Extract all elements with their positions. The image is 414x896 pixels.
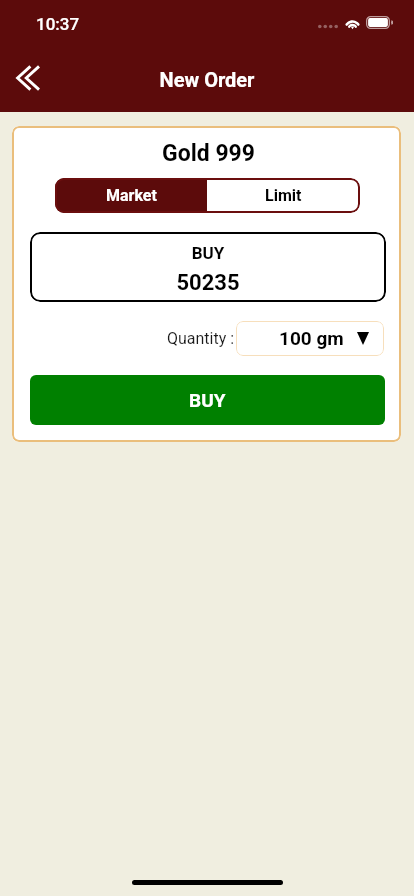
staticText: Gold 999 (14, 140, 401, 167)
button[interactable]: Back (4, 54, 52, 102)
staticText: Market (106, 186, 157, 205)
staticText: BUY (30, 243, 386, 263)
staticText: Quantity : (167, 329, 235, 348)
staticText: BUY (189, 389, 226, 411)
button[interactable]: Market (55, 178, 207, 213)
button[interactable]: 100 gm (236, 321, 384, 356)
staticText: 10:37 (36, 14, 80, 34)
button[interactable]: Limit (207, 178, 360, 213)
button[interactable]: BUY (30, 375, 385, 425)
staticText: New Order (0, 68, 414, 91)
staticText: 50235 (30, 270, 386, 296)
staticText: Limit (265, 186, 302, 205)
staticText: 100 gm (279, 327, 344, 349)
